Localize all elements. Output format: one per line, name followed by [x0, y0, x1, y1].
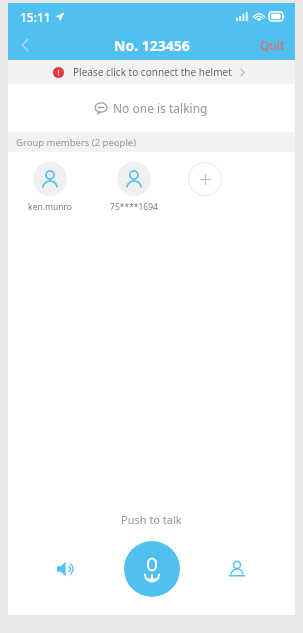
button[interactable]: Push to talk [124, 541, 180, 597]
button[interactable]: Quit [250, 31, 295, 59]
staticText: No. 123456 [114, 36, 190, 55]
button[interactable]: Members [216, 548, 258, 590]
staticText: Group members (2 people) [16, 136, 137, 149]
button[interactable]: Please click to connect the helmet [8, 60, 295, 84]
staticText: 15:11 [20, 9, 51, 25]
button[interactable]: Speaker [45, 548, 87, 590]
staticText: No one is talking [113, 100, 208, 116]
staticText: 75****1694 [110, 201, 158, 213]
staticText: Please click to connect the helmet [73, 65, 232, 79]
staticText: Quit [260, 37, 285, 53]
staticText: Push to talk [121, 512, 182, 527]
button[interactable]: 75****1694 [106, 162, 162, 213]
button[interactable]: Add member [188, 162, 222, 196]
button[interactable]: ken.munro [22, 162, 78, 213]
button[interactable]: Back [8, 30, 42, 60]
staticText: ken.munro [28, 201, 72, 213]
